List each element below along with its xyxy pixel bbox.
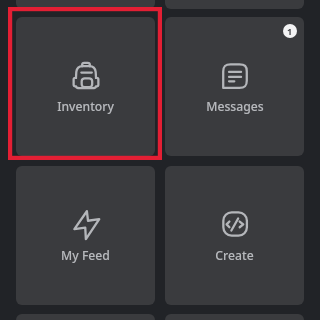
staticText: Inventory: [57, 98, 114, 115]
staticText: 1: [287, 25, 293, 37]
button[interactable]: Settings: [16, 314, 155, 320]
staticText: My Feed: [61, 247, 110, 264]
button[interactable]: Messages: [165, 17, 304, 156]
button[interactable]: Inventory: [16, 17, 155, 156]
button[interactable]: Help: [165, 314, 304, 320]
button[interactable]: My Feed: [16, 166, 155, 305]
staticText: Messages: [206, 98, 264, 115]
button[interactable]: Saved: [16, 0, 155, 9]
staticText: Create: [215, 247, 254, 264]
button[interactable]: Create: [165, 166, 304, 305]
